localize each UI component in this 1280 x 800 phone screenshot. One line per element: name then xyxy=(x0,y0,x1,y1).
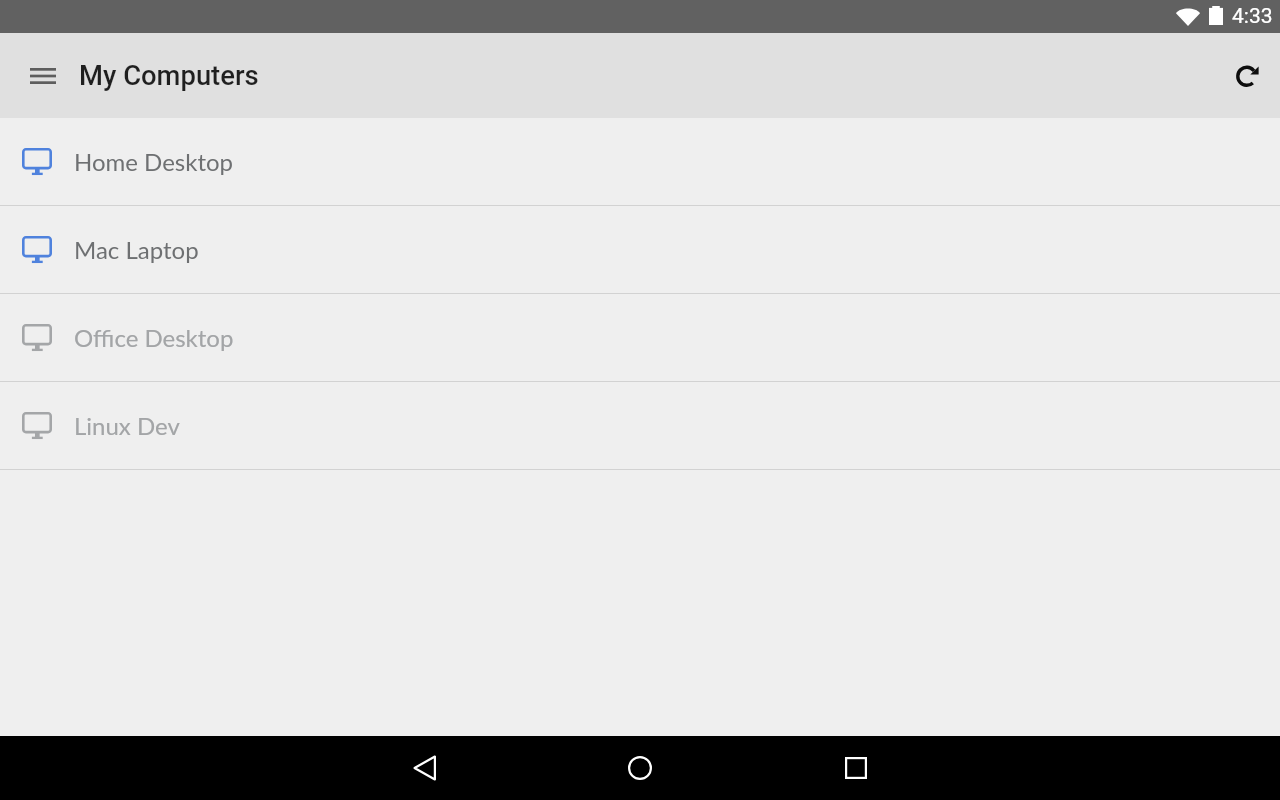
button[interactable]: Home Desktop xyxy=(0,118,1280,205)
staticText: 4:33 xyxy=(1232,4,1273,29)
staticText: Office Desktop xyxy=(74,323,234,352)
button[interactable]: Recent apps xyxy=(748,736,964,800)
button[interactable]: Linux Dev xyxy=(0,382,1280,469)
button[interactable]: Refresh xyxy=(1223,52,1271,100)
staticText: Linux Dev xyxy=(74,411,180,440)
button[interactable]: Mac Laptop xyxy=(0,206,1280,293)
button[interactable]: Back xyxy=(316,736,532,800)
staticText: My Computers xyxy=(79,60,259,92)
button[interactable]: Home xyxy=(532,736,748,800)
button[interactable]: Office Desktop xyxy=(0,294,1280,381)
button[interactable]: Open navigation drawer xyxy=(18,51,68,101)
staticText: Home Desktop xyxy=(74,147,234,176)
staticText: Mac Laptop xyxy=(74,235,199,264)
